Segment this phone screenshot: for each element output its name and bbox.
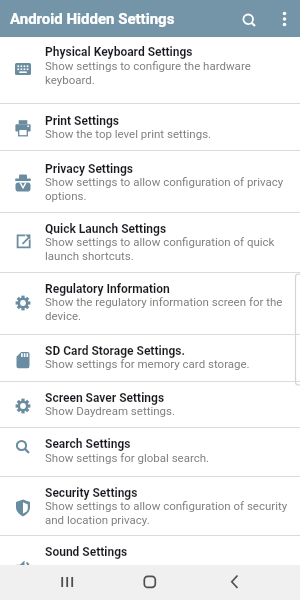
staticText: Show the regulatory information screen f… [45,295,283,323]
staticText: Show settings for global search. [45,451,210,464]
button[interactable] [49,565,85,600]
staticText: Show settings for memory card storage. [45,357,250,370]
staticText: Sound Settings [45,545,128,559]
button[interactable] [237,7,261,31]
staticText: Quick Launch Settings [45,222,167,236]
staticText: Show settings to configure the hardware … [45,59,251,87]
button[interactable]: Quick Launch Settings [0,213,300,273]
button[interactable] [273,7,297,31]
button[interactable]: Security Settings [0,477,300,537]
staticText: Print Settings [45,114,119,128]
staticText: Android Hidden Settings [10,10,175,28]
button[interactable]: Regulatory Information [0,273,300,335]
staticText: SD Card Storage Settings. [45,344,185,358]
staticText: Show Daydream settings. [45,404,175,417]
staticText: Show settings to allow configuration of … [45,175,284,203]
button[interactable]: SD Card Storage Settings. [0,335,300,382]
staticText: Physical Keyboard Settings [45,45,193,59]
staticText: Show the top level print settings. [45,127,212,140]
button[interactable]: Search Settings [0,428,300,477]
button[interactable]: Physical Keyboard Settings [0,37,300,104]
staticText: Show settings to allow configuration of … [45,499,288,527]
staticText: Regulatory Information [45,282,170,296]
staticText: Search Settings [45,437,131,451]
staticText: Show settings to allow configuration of … [45,235,275,263]
button[interactable] [214,565,250,600]
button[interactable]: Print Settings [0,104,300,151]
staticText: Security Settings [45,486,138,500]
button[interactable]: Sound Settings [0,536,300,565]
staticText: Privacy Settings [45,162,133,176]
button[interactable]: Privacy Settings [0,151,300,213]
staticText: Screen Saver Settings [45,391,165,405]
button[interactable]: Screen Saver Settings [0,382,300,429]
button[interactable] [132,565,168,600]
